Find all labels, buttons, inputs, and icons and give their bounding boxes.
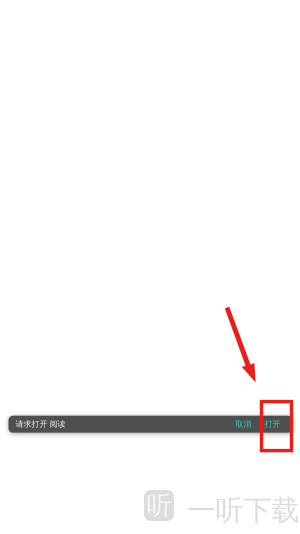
button[interactable]: 打开 [255, 416, 292, 433]
staticText: 听 [146, 490, 171, 521]
staticText: 请求打开 阅读 [15, 419, 65, 429]
button[interactable]: 取消 [219, 416, 255, 433]
staticText: 取消 [235, 419, 251, 429]
staticText: 一听下载 [187, 493, 299, 528]
staticText: 打开 [264, 419, 280, 429]
